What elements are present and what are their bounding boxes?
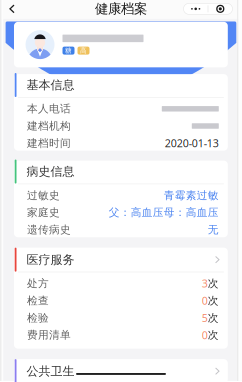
- button[interactable]: More options: [183, 3, 232, 14]
- staticText: 糖: [65, 46, 72, 55]
- staticText: 遗传病史: [27, 223, 71, 236]
- staticText: 建档时间: [27, 137, 71, 150]
- staticText: 3: [202, 276, 208, 291]
- staticText: 青霉素过敏: [164, 189, 219, 202]
- staticText: 次: [208, 311, 219, 324]
- staticText: 健康档案: [95, 1, 147, 17]
- button[interactable]: Back: [0, 0, 24, 19]
- staticText: 家庭史: [27, 206, 60, 219]
- staticText: 次: [208, 277, 219, 290]
- staticText: 0: [202, 328, 208, 342]
- staticText: 次: [208, 294, 219, 307]
- staticText: 0: [202, 294, 208, 308]
- staticText: 基本信息: [26, 78, 74, 92]
- staticText: 病史信息: [26, 164, 74, 179]
- staticText: 检验: [27, 311, 49, 324]
- staticText: 医疗服务: [26, 252, 74, 267]
- staticText: 过敏史: [27, 189, 60, 202]
- staticText: 2020-01-13: [165, 136, 219, 150]
- staticText: 本人电话: [27, 102, 71, 115]
- staticText: 父：高血压母：高血压: [109, 206, 219, 219]
- staticText: 次: [208, 328, 219, 342]
- staticText: 检查: [27, 294, 49, 307]
- staticText: 费用清单: [27, 328, 71, 342]
- staticText: 公共卫生: [26, 364, 74, 378]
- staticText: 处方: [27, 277, 49, 290]
- staticText: 无: [208, 223, 219, 236]
- staticText: 高: [80, 46, 87, 55]
- staticText: 5: [202, 311, 208, 325]
- staticText: 建档机构: [27, 119, 71, 132]
